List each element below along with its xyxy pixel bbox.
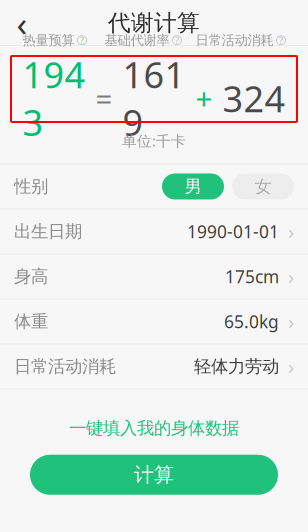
staticText: 1943	[22, 50, 85, 146]
staticText: ›	[288, 218, 294, 245]
staticText: 男	[184, 176, 201, 197]
staticText: 计算	[134, 462, 174, 487]
staticText: ‹	[16, 0, 27, 46]
staticText: 代谢计算	[108, 9, 200, 37]
staticText: 日常活动消耗	[14, 356, 116, 377]
staticText: 1990-01-01	[187, 220, 279, 243]
staticText: 一键填入我的身体数据	[69, 417, 239, 439]
staticText: 轻体力劳动	[194, 356, 279, 377]
staticText: 体重	[14, 311, 48, 332]
staticText: 性别	[14, 176, 48, 197]
button[interactable]: Back	[0, 1, 44, 45]
staticText: ?	[279, 34, 283, 46]
staticText: 日常活动消耗	[195, 32, 273, 48]
staticText: +	[195, 79, 212, 118]
button[interactable]: 体重	[0, 299, 308, 343]
staticText: 出生日期	[14, 221, 82, 242]
button[interactable]: 计算	[30, 455, 278, 495]
staticText: 175cm	[225, 265, 279, 288]
button[interactable]: 日常活动消耗	[0, 344, 308, 388]
staticText: ?	[175, 34, 179, 46]
staticText: ›	[288, 263, 294, 290]
staticText: 基础代谢率	[104, 32, 169, 48]
button[interactable]: 女	[232, 173, 294, 199]
staticText: 1619	[122, 50, 185, 146]
staticText: ›	[288, 353, 294, 380]
staticText: 单位:千卡	[122, 131, 186, 150]
staticText: 324	[222, 74, 285, 122]
staticText: 65.0kg	[224, 310, 279, 333]
button[interactable]: 一键填入我的身体数据	[49, 413, 259, 443]
button[interactable]: 身高	[0, 254, 308, 298]
staticText: ?	[80, 34, 84, 46]
staticText: 身高	[14, 266, 48, 287]
staticText: =	[95, 79, 112, 118]
button[interactable]: 出生日期	[0, 209, 308, 253]
button[interactable]: 男	[162, 173, 224, 199]
staticText: 热量预算	[22, 32, 74, 48]
staticText: ›	[288, 308, 294, 335]
staticText: 女	[254, 176, 271, 197]
